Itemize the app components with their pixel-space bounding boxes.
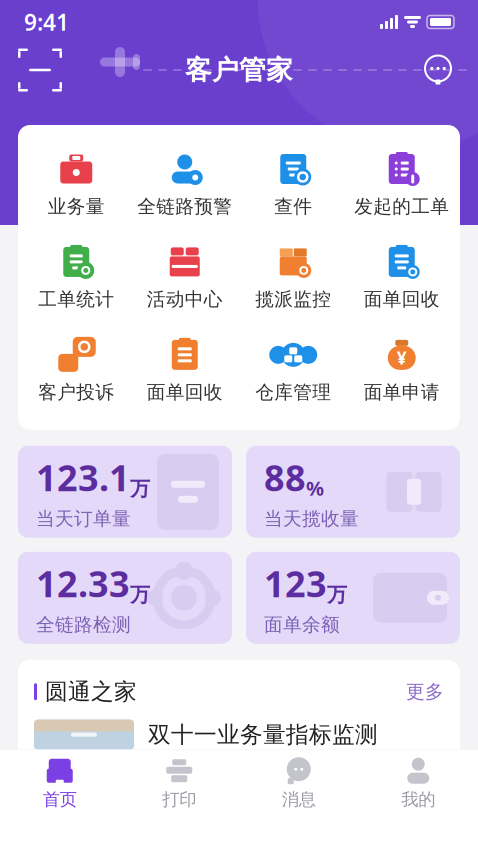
- staticText: ¥: [397, 346, 407, 369]
- staticText: 万: [130, 583, 150, 607]
- button[interactable]: 扫一扫: [18, 48, 62, 92]
- staticText: 圆通之家: [45, 678, 137, 706]
- staticText: 揽派监控: [255, 288, 331, 311]
- staticText: 客户投诉: [38, 381, 114, 404]
- button[interactable]: 业务量: [22, 147, 130, 222]
- button[interactable]: 面单回收: [130, 333, 239, 408]
- button[interactable]: 发起的工单: [347, 147, 456, 222]
- staticText: 123.1: [36, 453, 130, 501]
- button[interactable]: 88: [246, 446, 460, 538]
- button[interactable]: 123: [246, 552, 460, 644]
- button[interactable]: 消息: [416, 48, 460, 92]
- button[interactable]: ¥: [347, 333, 456, 408]
- staticText: 面单申请: [364, 381, 440, 404]
- staticText: 当天揽收量: [264, 507, 359, 530]
- button[interactable]: 面单回收: [347, 240, 456, 315]
- button[interactable]: 揽派监控: [239, 240, 347, 315]
- button[interactable]: 查件: [239, 147, 347, 222]
- button[interactable]: 12.33: [18, 552, 232, 644]
- staticText: 查件: [274, 195, 312, 218]
- staticText: 万: [130, 477, 150, 501]
- staticText: 全链路预警: [137, 195, 232, 218]
- staticText: 9:41: [24, 7, 69, 37]
- button[interactable]: 消息: [239, 750, 358, 816]
- button[interactable]: 客户投诉: [22, 333, 130, 408]
- staticText: 消息: [282, 789, 316, 810]
- staticText: 全链路检测: [36, 613, 131, 636]
- button[interactable]: 活动中心: [130, 240, 239, 315]
- button[interactable]: 全链路预警: [130, 147, 239, 222]
- staticText: 123: [264, 559, 327, 607]
- staticText: 发起的工单: [354, 195, 449, 218]
- staticText: 客户管家: [185, 54, 293, 86]
- button[interactable]: 首页: [0, 750, 119, 816]
- button[interactable]: 123.1: [18, 446, 232, 538]
- staticText: 仓库管理: [255, 381, 331, 404]
- button[interactable]: 我的: [358, 750, 478, 816]
- staticText: 当天订单量: [36, 507, 131, 530]
- button[interactable]: 双十一业务量指标监测: [18, 706, 460, 750]
- staticText: 面单回收: [147, 381, 223, 404]
- staticText: 首页: [43, 789, 77, 810]
- staticText: %: [306, 475, 324, 501]
- staticText: 面单回收: [364, 288, 440, 311]
- button[interactable]: 工单统计: [22, 240, 130, 315]
- staticText: 业务量: [48, 195, 105, 218]
- staticText: 面单余额: [264, 613, 340, 636]
- staticText: 工单统计: [38, 288, 114, 311]
- button[interactable]: 更多: [406, 680, 444, 703]
- staticText: 88: [264, 453, 306, 501]
- staticText: 更多: [406, 680, 444, 703]
- button[interactable]: 打印: [119, 750, 239, 816]
- button[interactable]: 仓库管理: [239, 333, 347, 408]
- staticText: 我的: [401, 789, 435, 810]
- staticText: 打印: [162, 789, 196, 810]
- staticText: 12.33: [36, 559, 130, 607]
- staticText: 活动中心: [147, 288, 223, 311]
- staticText: 双十一业务量指标监测: [148, 721, 378, 748]
- staticText: 万: [327, 583, 347, 607]
